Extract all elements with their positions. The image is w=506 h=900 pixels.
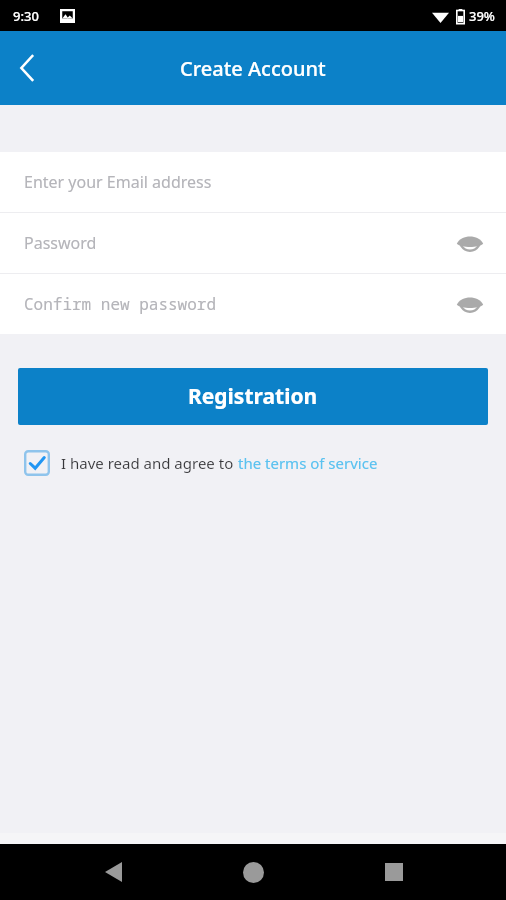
staticText: Create Account — [180, 55, 326, 82]
staticText: 39% — [469, 7, 495, 25]
button[interactable]: Home — [225, 844, 281, 900]
staticText: Registration — [188, 382, 318, 411]
button[interactable]: Back — [85, 844, 141, 900]
button[interactable]: Show password — [450, 284, 490, 324]
button[interactable]: Recents — [366, 844, 422, 900]
button[interactable]: Show password — [450, 223, 490, 263]
button[interactable]: Registration — [18, 368, 488, 425]
staticText: Enter your Email address — [24, 171, 212, 193]
button[interactable]: Password — [0, 213, 506, 273]
staticText: Password — [24, 232, 97, 254]
button[interactable]: the terms of service — [238, 453, 378, 473]
button[interactable]: Enter your Email address — [0, 152, 506, 212]
button[interactable]: Confirm new password — [0, 274, 506, 334]
staticText: 9:30 — [13, 7, 39, 25]
staticText: I have read and agree to — [61, 453, 238, 473]
button[interactable]: Back — [0, 41, 54, 95]
button[interactable]: I have read and agree to — [24, 450, 506, 476]
staticText: Confirm new password — [24, 293, 217, 315]
